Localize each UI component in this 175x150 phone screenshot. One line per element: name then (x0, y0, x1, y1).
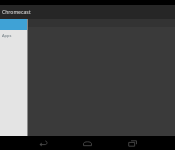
button[interactable]: Recent apps (125, 136, 139, 150)
staticText: Chromecast (2, 9, 31, 16)
button[interactable]: Back (36, 136, 50, 150)
staticText: Apps (2, 33, 12, 38)
button[interactable]: Home (80, 136, 94, 150)
button[interactable]: Apps (0, 30, 27, 41)
